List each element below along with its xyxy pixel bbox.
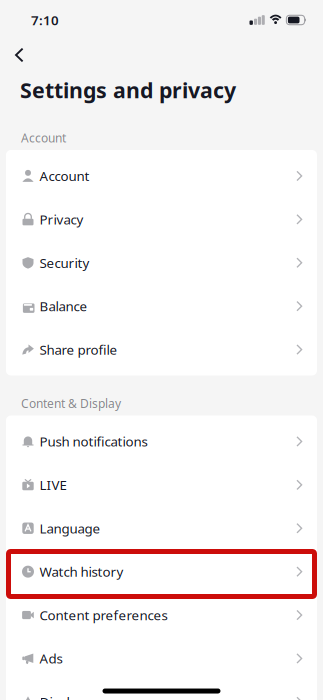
button[interactable]: Back (4, 42, 35, 68)
staticText: Push notifications (39, 433, 147, 450)
staticText: Share profile (39, 341, 117, 358)
button[interactable]: Language (6, 507, 317, 550)
button[interactable]: Security (6, 241, 317, 284)
staticText: Display (39, 693, 83, 700)
staticText: Watch history (39, 563, 123, 580)
staticText: Balance (39, 297, 87, 315)
staticText: Content & Display (21, 395, 121, 411)
staticText: Content preferences (39, 606, 167, 624)
staticText: Account (39, 167, 89, 185)
button[interactable]: Display (6, 680, 317, 700)
staticText: LIVE (39, 476, 66, 494)
button[interactable]: Push notifications (6, 420, 317, 463)
staticText: Language (39, 519, 100, 537)
button[interactable]: Privacy (6, 198, 317, 241)
button[interactable]: Balance (6, 284, 317, 328)
button[interactable]: LIVE (6, 463, 317, 506)
staticText: Settings and privacy (20, 76, 236, 104)
staticText: Account (21, 130, 66, 146)
button[interactable]: Ads (6, 637, 317, 680)
button[interactable]: Account (6, 154, 317, 198)
staticText: Ads (39, 650, 62, 667)
staticText: 7:10 (31, 11, 59, 29)
staticText: Security (39, 254, 89, 272)
staticText: Privacy (39, 210, 83, 228)
button[interactable]: Watch history (6, 550, 317, 593)
button[interactable]: Content preferences (6, 593, 317, 637)
button[interactable]: Share profile (6, 328, 317, 371)
